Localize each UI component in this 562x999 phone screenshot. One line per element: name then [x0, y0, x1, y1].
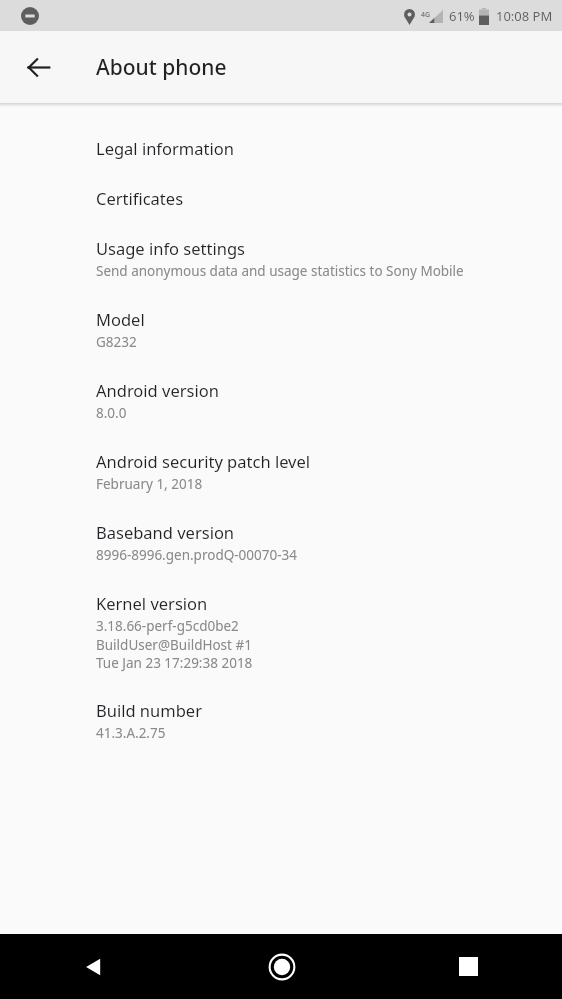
staticText: Send anonymous data and usage statistics…: [96, 262, 464, 280]
staticText: 8.0.0: [96, 404, 127, 422]
staticText: About phone: [96, 53, 227, 82]
staticText: 8996-8996.gen.prodQ-00070-34: [96, 546, 297, 564]
staticText: Build number: [96, 699, 202, 721]
staticText: 10:08 PM: [496, 7, 553, 25]
button[interactable]: Model: [0, 294, 562, 365]
staticText: G8232: [96, 333, 137, 351]
staticText: Baseband version: [96, 521, 235, 543]
button[interactable]: Legal information: [0, 123, 562, 173]
staticText: Usage info settings: [96, 237, 245, 259]
staticText: 4G: [421, 10, 431, 20]
staticText: Kernel version: [96, 592, 208, 614]
button[interactable]: Usage info settings: [0, 223, 562, 294]
staticText: February 1, 2018: [96, 475, 203, 493]
button[interactable]: Android security patch level: [0, 436, 562, 507]
button[interactable]: Android version: [0, 365, 562, 436]
button[interactable]: Recent apps: [375, 934, 562, 999]
staticText: 41.3.A.2.75: [96, 724, 166, 742]
button[interactable]: Back: [0, 934, 188, 999]
staticText: Certificates: [96, 187, 184, 209]
staticText: Legal information: [96, 137, 234, 159]
button[interactable]: Home: [188, 934, 375, 999]
staticText: Android version: [96, 379, 219, 401]
button[interactable]: Certificates: [0, 173, 562, 223]
button[interactable]: Navigate up: [14, 43, 62, 91]
button[interactable]: Build number: [0, 685, 562, 756]
staticText: 3.18.66-perf-g5cd0be2 BuildUser@BuildHos…: [96, 617, 253, 671]
staticText: Model: [96, 308, 145, 330]
button[interactable]: Baseband version: [0, 507, 562, 578]
staticText: 61%: [449, 7, 475, 25]
button[interactable]: Kernel version: [0, 578, 562, 685]
staticText: Android security patch level: [96, 450, 311, 472]
